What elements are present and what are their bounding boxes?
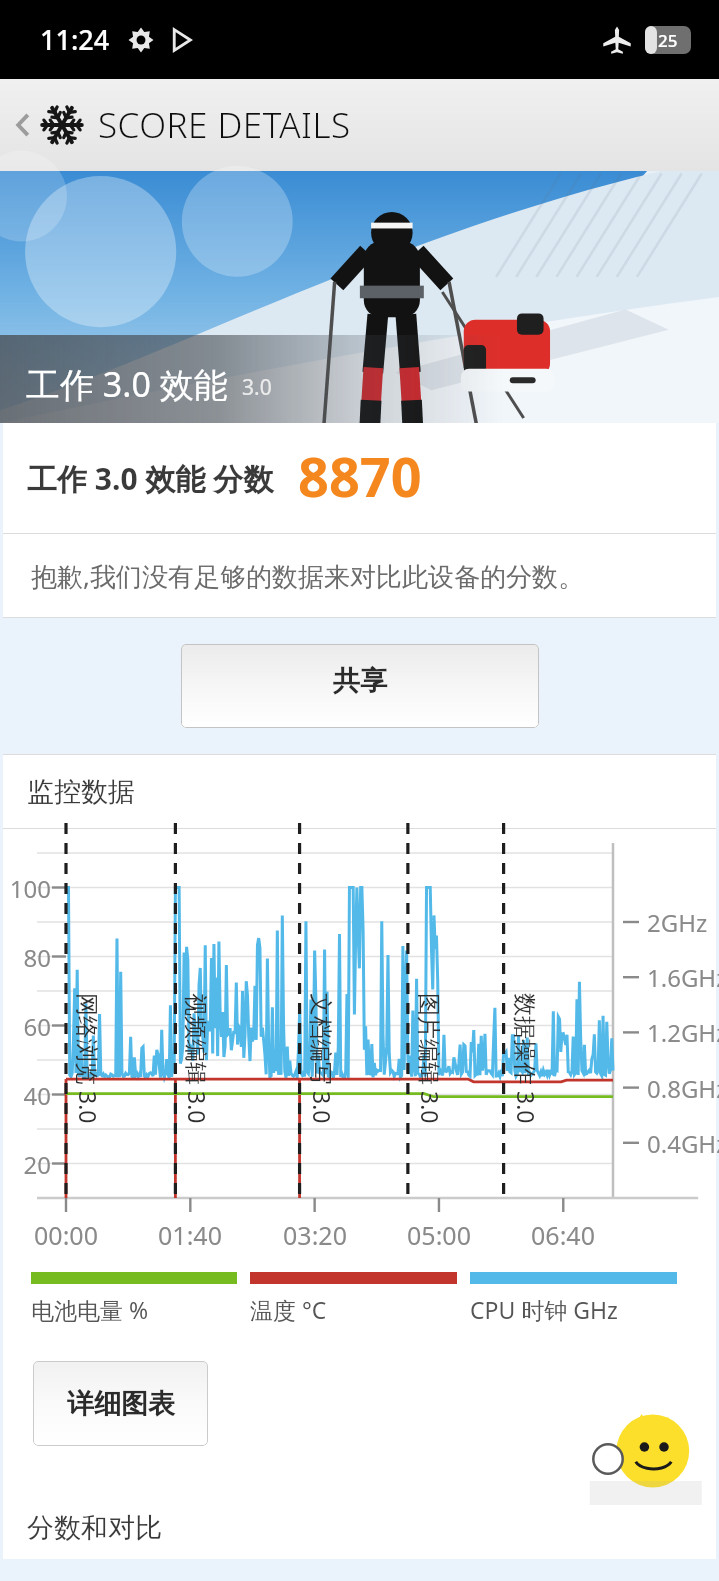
staticText: 25 (658, 29, 678, 52)
staticText: CPU 时钟 GHz (470, 1294, 618, 1325)
staticText: 抱歉,我们没有足够的数据来对比此设备的分数。 (31, 558, 584, 594)
staticText: 视频编辑 3.0 (182, 993, 213, 1124)
button[interactable]: 电池电量 % (31, 1272, 250, 1325)
staticText: 8870 (298, 439, 422, 513)
staticText: 06:40 (513, 1218, 613, 1252)
staticText: 电池电量 % (31, 1294, 149, 1325)
staticText: 100 (3, 872, 51, 905)
staticText: 0.4GHz (647, 1127, 719, 1160)
button[interactable]: CPU 时钟 GHz (470, 1272, 690, 1325)
staticText: 监控数据 (27, 775, 135, 809)
button[interactable]: 抱歉,我们没有足够的数据来对比此设备的分数。 (3, 534, 716, 617)
staticText: 共享 (333, 664, 387, 698)
button[interactable]: 温度 °C (250, 1272, 470, 1325)
staticText: 分数和对比 (27, 1511, 162, 1545)
staticText: 详细图表 (67, 1387, 175, 1421)
staticText: 11:24 (40, 21, 110, 58)
staticText: 工作 3.0 效能 分数 (27, 458, 274, 499)
staticText: 温度 °C (250, 1294, 327, 1325)
staticText: 01:40 (140, 1218, 240, 1252)
button[interactable]: 共享 (181, 644, 539, 728)
button[interactable]: 工作 3.0 效能 分数 (3, 423, 716, 533)
staticText: 1.2GHz (647, 1016, 719, 1049)
staticText: 40 (3, 1079, 51, 1112)
staticText: 图片编辑 3.0 (415, 993, 446, 1124)
staticText: SCORE DETAILS (98, 101, 351, 149)
staticText: 工作 3.0 效能 (26, 361, 228, 407)
staticText: 00:00 (16, 1218, 116, 1252)
staticText: 数据操作 3.0 (511, 993, 542, 1124)
staticText: 3.0 (242, 373, 272, 402)
button[interactable]: 详细图表 (33, 1361, 208, 1446)
staticText: 网络浏览 3.0 (73, 993, 104, 1124)
staticText: 80 (3, 941, 51, 974)
staticText: 1.6GHz (647, 961, 719, 994)
staticText: 03:20 (265, 1218, 365, 1252)
staticText: 2GHz (647, 906, 708, 939)
staticText: 20 (3, 1148, 51, 1181)
staticText: 文档编写 3.0 (307, 993, 338, 1124)
staticText: 0.8GHz (647, 1072, 719, 1105)
staticText: 05:00 (389, 1218, 489, 1252)
other: Back (8, 110, 38, 140)
staticText: 60 (3, 1010, 51, 1043)
button[interactable]: Back (0, 79, 719, 171)
